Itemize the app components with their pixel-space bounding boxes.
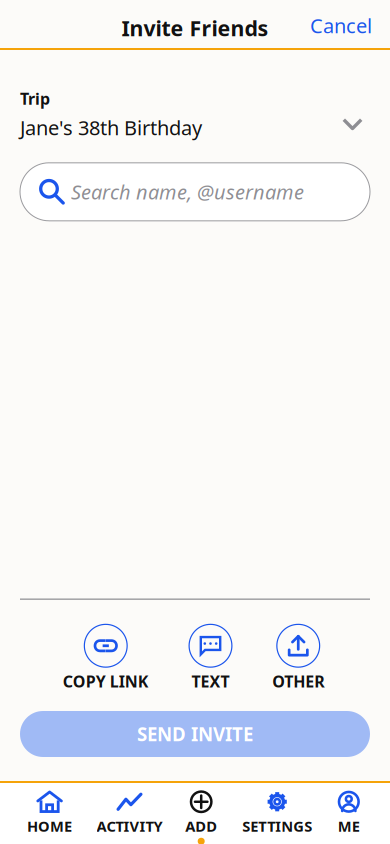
button[interactable]: TEXT [188, 624, 232, 692]
staticText: OTHER [272, 671, 324, 692]
button[interactable]: ACTIVITY [99, 790, 160, 844]
staticText: COPY LINK [63, 671, 149, 692]
button[interactable]: ME [312, 790, 386, 844]
button[interactable]: SETTINGS [243, 790, 312, 844]
staticText: Cancel [310, 12, 372, 39]
staticText: Trip [20, 88, 50, 109]
button[interactable]: SEND INVITE [20, 711, 370, 757]
button[interactable]: ADD [160, 790, 243, 844]
staticText: Jane's 38th Birthday [20, 114, 202, 141]
staticText: TEXT [191, 671, 229, 692]
button[interactable]: OTHER [272, 624, 324, 692]
staticText: ME [338, 816, 360, 836]
staticText: Invite Friends [121, 14, 268, 42]
staticText: SETTINGS [242, 816, 312, 836]
staticText: ACTIVITY [96, 816, 162, 836]
button[interactable]: Cancel [306, 2, 376, 46]
staticText: ADD [185, 816, 217, 836]
button[interactable]: Trip [0, 50, 390, 163]
staticText: HOME [27, 816, 72, 836]
staticText: SEND INVITE [137, 722, 253, 746]
staticText: Search name, @username [71, 178, 304, 205]
button[interactable]: HOME [0, 790, 99, 844]
button[interactable]: COPY LINK [63, 624, 149, 692]
